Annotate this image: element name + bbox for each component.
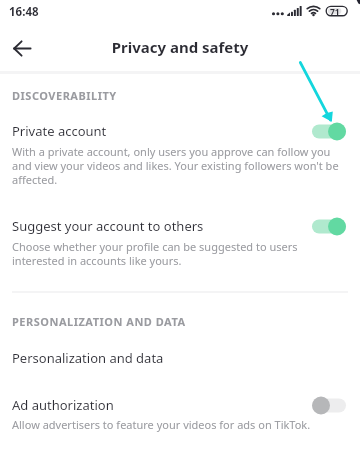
staticText: Ad authorization — [12, 396, 114, 414]
staticText: Personalization and data — [12, 349, 164, 367]
button[interactable] — [0, 205, 360, 270]
staticText: Private account — [12, 122, 107, 140]
button[interactable]: Personalization and data — [0, 338, 360, 376]
button[interactable] — [0, 386, 360, 436]
button[interactable] — [0, 112, 360, 190]
staticText: Suggest your account to others — [12, 217, 204, 235]
staticText: 71 — [330, 6, 340, 18]
staticText: Allow advertisers to feature your videos… — [12, 417, 339, 432]
staticText: With a private account, only users you a… — [12, 144, 339, 187]
staticText: DISCOVERABILITY — [12, 88, 117, 103]
button[interactable]: Back — [4, 30, 40, 66]
staticText: PERSONALIZATION AND DATA — [12, 314, 186, 329]
staticText: Privacy and safety — [0, 37, 360, 57]
staticText: 16:48 — [9, 4, 39, 20]
staticText: Choose whether your profile can be sugge… — [12, 239, 339, 268]
